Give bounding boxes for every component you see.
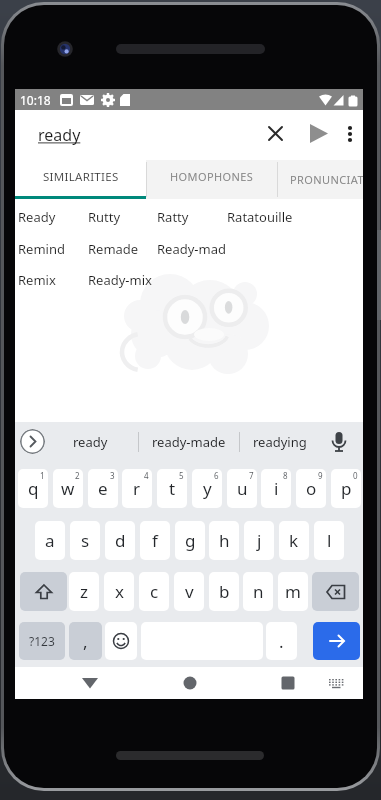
button[interactable]: v (174, 572, 204, 611)
staticText: l (327, 529, 332, 552)
button[interactable] (20, 572, 67, 611)
staticText: f (152, 529, 158, 552)
button[interactable]: t (157, 469, 187, 508)
button[interactable]: y (192, 469, 222, 508)
button[interactable]: b (209, 572, 239, 611)
button[interactable]: p (331, 469, 361, 508)
staticText: readying (253, 433, 307, 451)
staticText: o (306, 477, 317, 500)
staticText: e (98, 477, 108, 500)
button[interactable]: n (243, 572, 273, 611)
button[interactable]: Remix (18, 271, 86, 289)
staticText: . (279, 630, 284, 653)
button[interactable]: a (35, 521, 65, 560)
staticText: t (169, 477, 176, 500)
button[interactable] (266, 124, 286, 144)
staticText: Ready-made (157, 240, 225, 258)
staticText: Ready (18, 208, 56, 226)
staticText: i (274, 477, 279, 500)
staticText: a (45, 529, 55, 552)
button[interactable]: Ready-made (157, 240, 225, 258)
staticText: 1 (40, 470, 45, 481)
button[interactable]: , (69, 622, 102, 660)
button[interactable]: . (266, 622, 297, 660)
button[interactable]: Ready-mix (88, 271, 156, 289)
button[interactable]: Remade (88, 240, 156, 258)
staticText: ?123 (29, 633, 55, 649)
staticText: 3 (110, 470, 115, 481)
staticText: Remade (88, 240, 139, 258)
button[interactable]: c (139, 572, 169, 611)
button[interactable]: j (244, 521, 274, 560)
button[interactable]: u (227, 469, 257, 508)
staticText: k (289, 529, 299, 552)
staticText: ready-made (152, 433, 226, 451)
button[interactable]: ?123 (19, 622, 65, 660)
staticText: SIMILARITIES (43, 169, 119, 185)
staticText: w (61, 477, 75, 500)
button[interactable]: Rutty (88, 208, 156, 226)
button[interactable] (20, 429, 45, 454)
button[interactable]: ready (15, 110, 363, 160)
button[interactable] (327, 674, 345, 692)
button[interactable]: d (105, 521, 135, 560)
staticText: n (253, 580, 264, 603)
staticText: r (133, 477, 141, 500)
button[interactable]: w (53, 469, 83, 508)
button[interactable]: x (104, 572, 134, 611)
button[interactable]: ready-made (139, 422, 239, 462)
button[interactable]: k (279, 521, 309, 560)
staticText: c (150, 580, 159, 603)
staticText: x (115, 580, 124, 603)
button[interactable] (325, 428, 353, 456)
button[interactable]: r (122, 469, 152, 508)
staticText: 5 (179, 470, 184, 481)
button[interactable]: HOMOPHONES (146, 160, 277, 199)
button[interactable] (81, 674, 99, 692)
staticText: 0 (353, 470, 358, 481)
button[interactable]: SIMILARITIES (15, 160, 146, 199)
button[interactable]: PRONUNCIATION (277, 160, 363, 199)
button[interactable]: g (175, 521, 205, 560)
staticText: g (185, 529, 196, 552)
staticText: j (257, 529, 262, 552)
button[interactable]: f (140, 521, 170, 560)
button[interactable]: q (18, 469, 48, 508)
button[interactable]: i (261, 469, 291, 508)
button[interactable]: l (314, 521, 344, 560)
staticText: d (115, 529, 126, 552)
button[interactable] (181, 674, 199, 692)
button[interactable]: Ratty (157, 208, 225, 226)
button[interactable]: e (88, 469, 118, 508)
button[interactable]: h (209, 521, 239, 560)
staticText: y (203, 477, 212, 500)
staticText: Remix (18, 271, 56, 289)
button[interactable] (313, 622, 360, 660)
staticText: HOMOPHONES (170, 169, 254, 184)
button[interactable]: Remind (18, 240, 86, 258)
staticText: 7 (249, 470, 254, 481)
button[interactable]: ready (55, 422, 125, 462)
button[interactable]: s (70, 521, 100, 560)
staticText: Ready-mix (88, 271, 152, 289)
button[interactable] (312, 572, 359, 611)
button[interactable]: m (278, 572, 308, 611)
staticText: z (80, 580, 88, 603)
button[interactable]: o (296, 469, 326, 508)
button[interactable]: z (69, 572, 99, 611)
button[interactable] (342, 122, 358, 146)
button[interactable]: readying (243, 422, 317, 462)
staticText: 6 (214, 470, 219, 481)
button[interactable] (279, 674, 297, 692)
button[interactable] (105, 622, 137, 660)
staticText: 2 (75, 470, 80, 481)
staticText: 4 (144, 470, 149, 481)
staticText: p (341, 477, 352, 500)
button[interactable]: Ratatouille (227, 208, 295, 226)
staticText: 10:18 (20, 92, 51, 108)
button[interactable] (307, 122, 331, 146)
staticText: Rutty (88, 208, 121, 226)
staticText: u (237, 477, 248, 500)
button[interactable]: Ready (18, 208, 86, 226)
